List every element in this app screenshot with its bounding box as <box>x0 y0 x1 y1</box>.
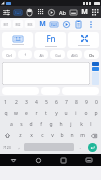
button[interactable]: Text size <box>57 6 68 18</box>
button[interactable]: d <box>26 119 36 130</box>
staticText: u <box>64 110 68 117</box>
button[interactable]: Enter <box>84 141 101 153</box>
staticText: w <box>14 110 18 117</box>
button[interactable]: Keyboard <box>12 6 24 18</box>
staticText: 4 <box>35 99 38 106</box>
button[interactable]: Hide keyboard <box>0 154 26 166</box>
button[interactable]: k <box>76 119 86 130</box>
staticText: 1 <box>4 99 7 106</box>
staticText: y <box>55 110 58 117</box>
staticText: k <box>80 121 83 128</box>
button[interactable]: s <box>16 119 26 130</box>
button[interactable]: Recents <box>51 154 76 166</box>
button[interactable] <box>41 87 60 95</box>
button[interactable]: p <box>91 108 101 119</box>
button[interactable]: Gui <box>50 50 65 59</box>
staticText: M1 <box>3 22 9 27</box>
button[interactable]: f <box>36 119 46 130</box>
button[interactable]: ?123 <box>0 141 14 153</box>
button[interactable]: Macro <box>79 6 90 18</box>
staticText: f <box>40 121 42 128</box>
button[interactable]: Switch keyboard <box>76 154 101 166</box>
button[interactable]: 7 <box>61 97 71 108</box>
button[interactable]: e <box>21 108 31 119</box>
button[interactable]: Home <box>26 154 51 166</box>
button[interactable]: M2 <box>13 20 23 28</box>
button[interactable]: u <box>61 108 71 119</box>
button[interactable]: 6 <box>51 97 61 108</box>
staticText: M <box>81 7 88 17</box>
staticText: x <box>30 132 33 139</box>
button[interactable] <box>2 62 90 85</box>
button[interactable]: More options <box>84 18 95 30</box>
button[interactable]: y <box>51 108 61 119</box>
button[interactable]: r <box>31 108 41 119</box>
button[interactable]: 1 <box>0 97 11 108</box>
button[interactable]: AltG <box>67 50 82 59</box>
staticText: M3 <box>27 22 33 27</box>
button[interactable]: x <box>26 130 37 141</box>
button[interactable]: Fullscreen <box>68 32 99 48</box>
button[interactable]: Comma <box>14 141 23 153</box>
button[interactable]: g <box>46 119 56 130</box>
button[interactable]: t <box>41 108 51 119</box>
button[interactable]: Record <box>60 18 72 30</box>
button[interactable]: h <box>56 119 66 130</box>
button[interactable]: 9 <box>81 97 91 108</box>
button[interactable]: 5 <box>41 97 51 108</box>
button[interactable]: b <box>57 130 67 141</box>
button[interactable]: Clipboard <box>72 18 84 30</box>
button[interactable]: a <box>6 119 16 130</box>
button[interactable]: j <box>66 119 76 130</box>
button[interactable]: Backspace <box>87 130 101 141</box>
button[interactable]: i <box>71 108 81 119</box>
staticText: j <box>70 121 72 128</box>
button[interactable]: w <box>11 108 21 119</box>
staticText: ↑ <box>24 53 27 57</box>
button[interactable]: Scroll control <box>92 62 99 85</box>
staticText: M <box>39 19 46 29</box>
button[interactable]: 2 <box>11 97 21 108</box>
button[interactable]: Ctrl <box>2 50 16 59</box>
button[interactable]: Shift <box>0 130 15 141</box>
button[interactable]: Grid <box>35 6 46 18</box>
staticText: o <box>84 110 88 117</box>
button[interactable]: z <box>15 130 26 141</box>
button[interactable]: 0 <box>91 97 101 108</box>
button[interactable]: Macro M <box>36 18 48 30</box>
button[interactable]: m <box>77 130 87 141</box>
staticText: n <box>70 132 74 139</box>
button[interactable]: Keyboard <box>2 32 33 48</box>
button[interactable]: Play <box>46 6 57 18</box>
button[interactable]: l <box>86 119 96 130</box>
button[interactable]: M3 <box>25 20 35 28</box>
staticText: 5 <box>45 99 48 106</box>
staticText: m <box>80 132 85 139</box>
staticText: 2 <box>15 99 18 106</box>
button[interactable]: 8 <box>71 97 81 108</box>
button[interactable]: 4 <box>31 97 41 108</box>
button[interactable]: M1 <box>1 20 11 28</box>
button[interactable]: n <box>67 130 77 141</box>
button[interactable]: q <box>0 108 11 119</box>
button[interactable]: v <box>47 130 57 141</box>
button[interactable]: 3 <box>21 97 31 108</box>
button[interactable]: Apps <box>90 6 101 18</box>
button[interactable]: ↑ <box>18 50 32 59</box>
button[interactable]: o <box>81 108 91 119</box>
button[interactable]: Mouse <box>24 6 35 18</box>
staticText: e <box>25 110 28 117</box>
button[interactable]: Fn keys <box>35 32 66 48</box>
button[interactable]: Alt <box>34 50 48 59</box>
button[interactable]: c <box>37 130 47 141</box>
button[interactable]: Cls <box>84 50 99 59</box>
button[interactable]: Sliders <box>0 6 12 18</box>
button[interactable]: Keyboard <box>48 18 60 30</box>
staticText: Ctrl <box>6 53 12 57</box>
button[interactable]: Screen <box>68 6 79 18</box>
staticText: v <box>51 132 54 139</box>
